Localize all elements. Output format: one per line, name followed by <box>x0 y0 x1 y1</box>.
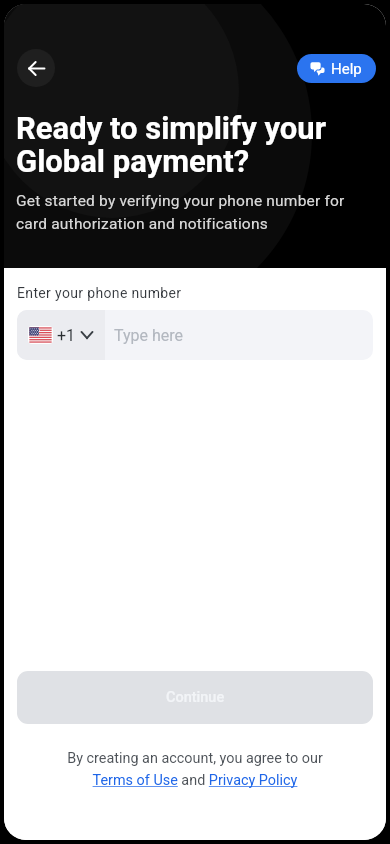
staticText: Ready to simplify your Global payment? <box>16 110 327 180</box>
staticText: Enter your phone number <box>17 285 182 301</box>
staticText: +1 <box>57 326 76 345</box>
staticText: Continue <box>166 689 225 706</box>
button[interactable]: Help <box>297 54 376 83</box>
button[interactable]: Select country code <box>17 310 105 360</box>
staticText: By creating an account, you agree to our… <box>17 750 373 789</box>
button[interactable]: Type here <box>105 310 373 360</box>
staticText: Type here <box>114 326 184 345</box>
staticText: Get started by verifying your phone numb… <box>16 192 350 233</box>
button[interactable]: Continue <box>17 671 373 724</box>
button[interactable]: Back <box>17 49 55 87</box>
staticText: Help <box>331 60 362 78</box>
